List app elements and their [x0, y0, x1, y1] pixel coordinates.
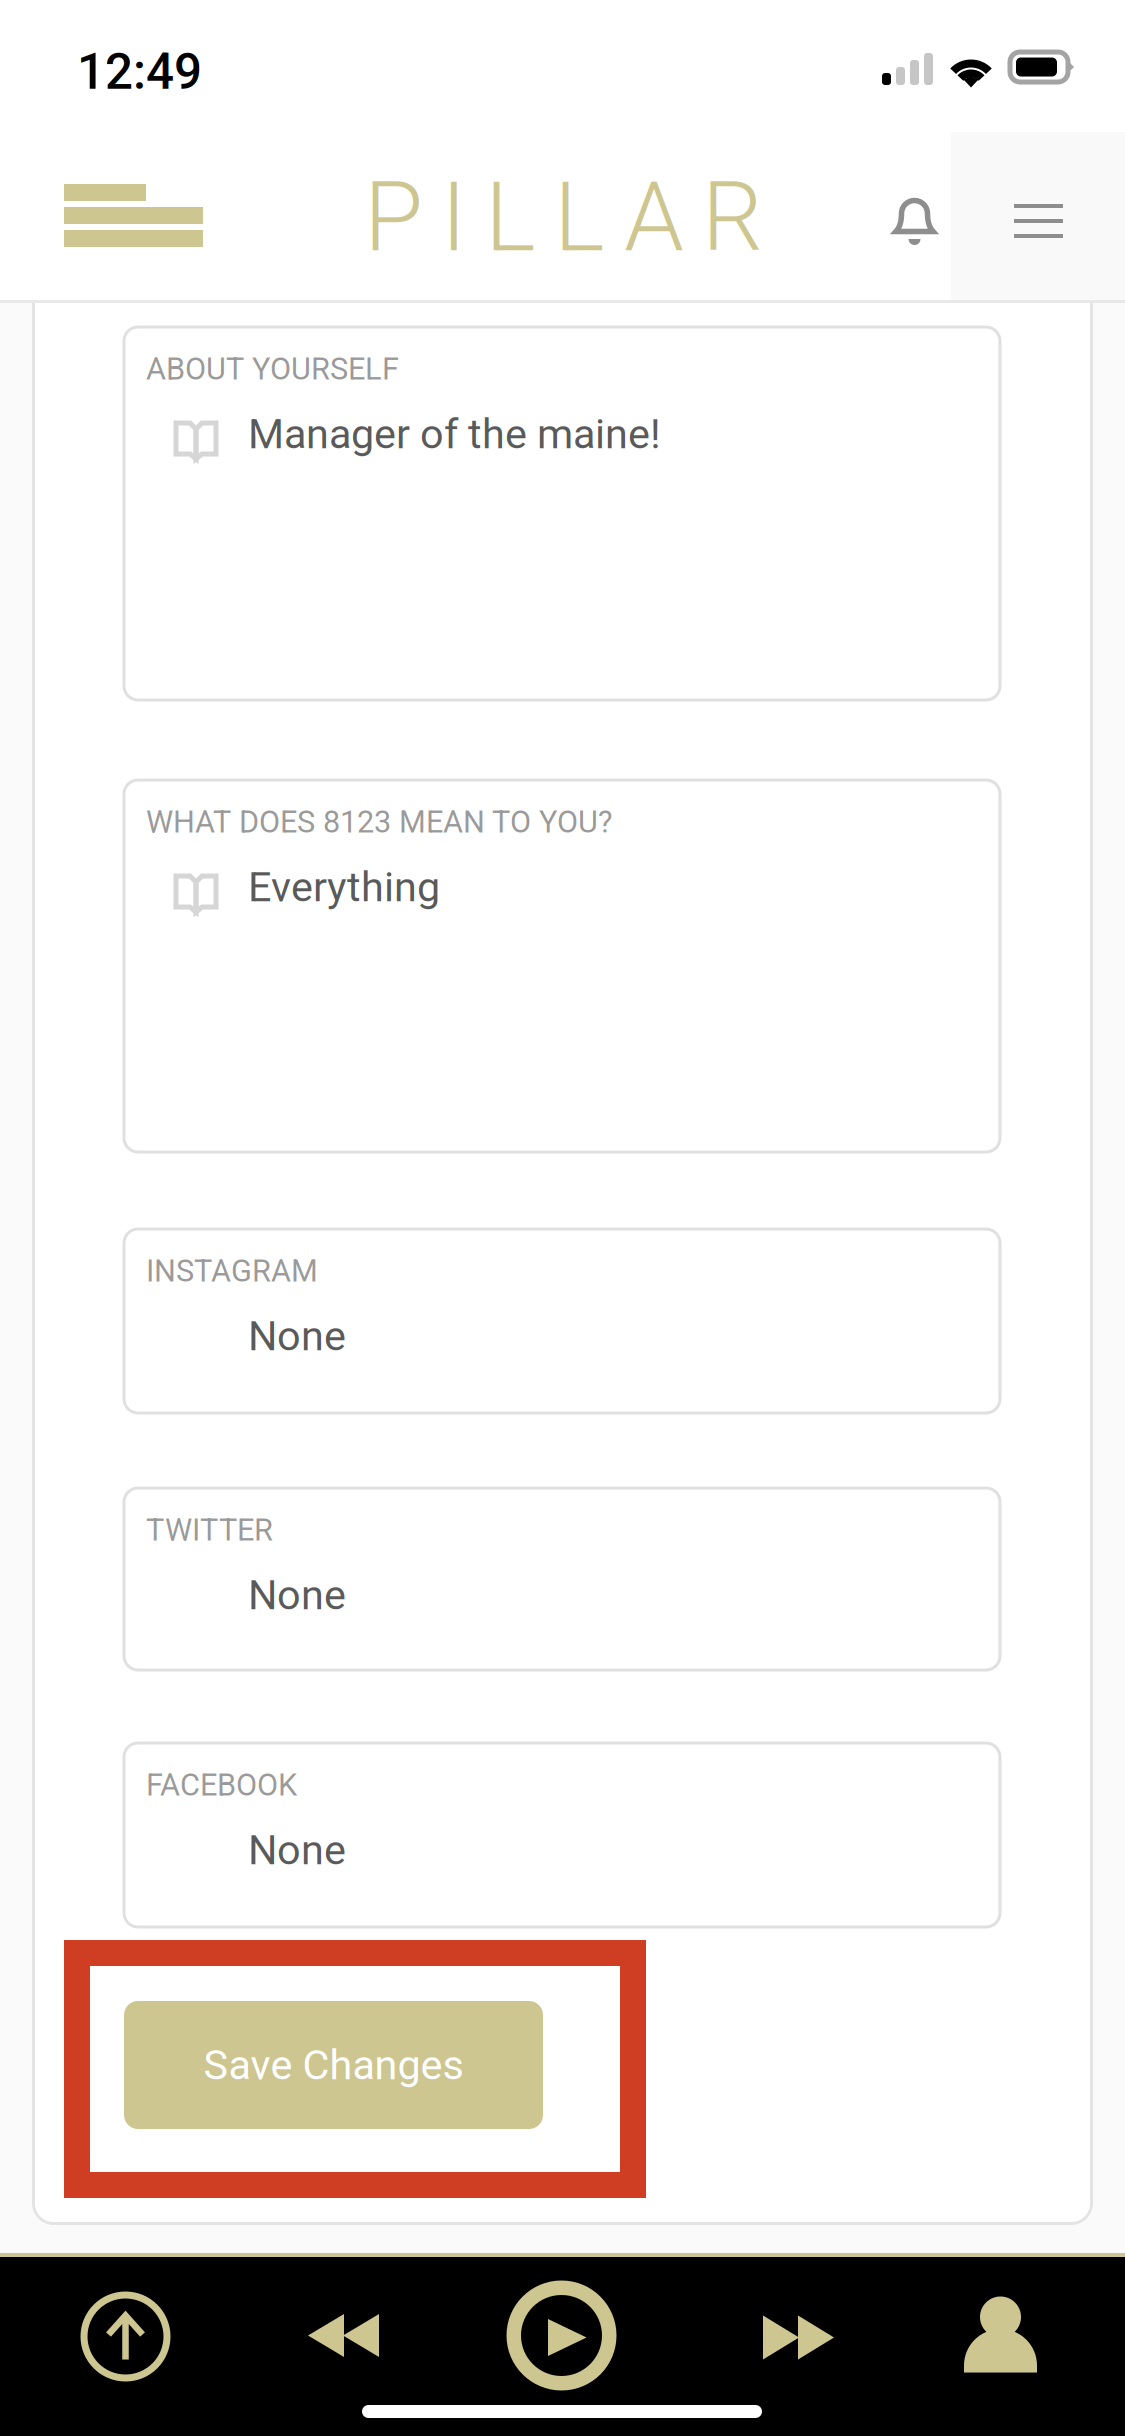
- button[interactable]: Menu: [64, 130, 264, 301]
- staticText: Save Changes: [203, 2041, 463, 2089]
- button[interactable]: Rewind: [231, 2246, 456, 2425]
- staticText: ABOUT YOURSELF: [146, 351, 399, 387]
- button[interactable]: Save Changes: [124, 2001, 543, 2129]
- staticText: Manager of the maine!: [248, 410, 661, 458]
- staticText: Everything: [248, 863, 440, 911]
- button[interactable]: Play: [449, 2246, 674, 2425]
- button[interactable]: Fast forward: [684, 2248, 909, 2427]
- staticText: None: [248, 1571, 346, 1619]
- staticText: WHAT DOES 8123 MEAN TO YOU?: [146, 804, 612, 840]
- button[interactable]: Profile: [888, 2245, 1113, 2424]
- staticText: PILLAR: [364, 161, 763, 274]
- staticText: INSTAGRAM: [146, 1253, 318, 1289]
- staticText: FACEBOOK: [146, 1767, 297, 1803]
- button[interactable]: Notifications: [892, 196, 1012, 367]
- staticText: TWITTER: [146, 1512, 273, 1548]
- staticText: None: [248, 1826, 346, 1874]
- button[interactable]: More: [1014, 204, 1125, 372]
- staticText: 12:49: [77, 43, 202, 101]
- staticText: None: [248, 1312, 346, 1360]
- button[interactable]: Scroll to top: [13, 2247, 238, 2426]
